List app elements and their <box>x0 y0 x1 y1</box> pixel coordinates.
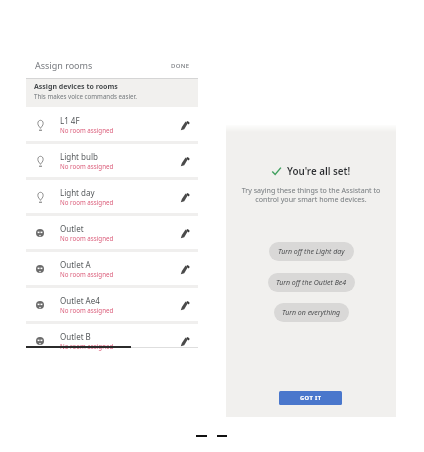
button[interactable]: Edit room for Light bulb <box>173 144 197 180</box>
button[interactable]: Outlet B <box>26 323 198 359</box>
staticText: Try saying these things to the Assistant… <box>241 185 381 204</box>
button[interactable]: Light day <box>26 179 198 215</box>
staticText: You're all set! <box>287 165 351 178</box>
staticText: No room assigned <box>60 342 114 350</box>
staticText: Outlet <box>60 223 84 234</box>
button[interactable]: Turn off the Outlet Be4 <box>268 273 355 292</box>
staticText: Light bulb <box>60 151 98 162</box>
staticText: L1 4F <box>60 115 80 126</box>
button[interactable]: Turn off the Light day <box>269 242 354 261</box>
button[interactable]: Edit room for Outlet Ae4 <box>173 288 197 324</box>
staticText: No room assigned <box>60 270 114 278</box>
staticText: No room assigned <box>60 126 114 134</box>
staticText: Assign rooms <box>35 59 93 71</box>
staticText: Turn off the Light day <box>278 247 345 257</box>
button[interactable]: Edit room for Outlet <box>173 216 197 252</box>
button[interactable]: Edit room for Light day <box>173 180 197 216</box>
button[interactable]: Outlet A <box>26 251 198 287</box>
staticText: No room assigned <box>60 198 114 206</box>
button[interactable]: Light bulb <box>26 143 198 179</box>
button[interactable]: L1 4F <box>26 107 198 143</box>
staticText: Turn on everything <box>282 308 341 318</box>
button[interactable]: Outlet <box>26 215 198 251</box>
staticText: DONE <box>171 62 190 70</box>
staticText: Outlet Ae4 <box>60 295 100 306</box>
button[interactable]: Turn on everything <box>274 303 349 322</box>
staticText: No room assigned <box>60 162 114 170</box>
staticText: GOT IT <box>300 394 322 402</box>
staticText: Assign devices to rooms <box>34 82 118 92</box>
button[interactable]: DONE <box>163 58 198 74</box>
button[interactable]: Edit room for Outlet A <box>173 252 197 288</box>
staticText: No room assigned <box>60 306 114 314</box>
button[interactable]: Outlet Ae4 <box>26 287 198 323</box>
button[interactable]: Edit room for Outlet B <box>173 324 197 360</box>
staticText: No room assigned <box>60 234 114 242</box>
staticText: Turn off the Outlet Be4 <box>276 278 347 288</box>
button[interactable]: Edit room for L1 4F <box>173 108 197 144</box>
staticText: This makes voice commands easier. <box>34 92 137 100</box>
staticText: Light day <box>60 187 95 198</box>
button[interactable]: GOT IT <box>279 391 342 405</box>
staticText: Outlet A <box>60 259 91 270</box>
staticText: Outlet B <box>60 331 91 342</box>
